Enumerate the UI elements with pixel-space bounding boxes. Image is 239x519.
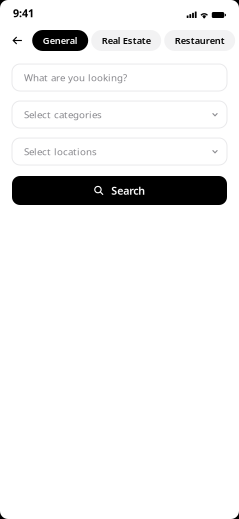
button[interactable]: Restaurent <box>164 30 235 51</box>
button[interactable]: Real Estate <box>91 30 161 51</box>
button[interactable]: Back <box>12 30 32 51</box>
button[interactable]: Select locations <box>12 138 227 165</box>
staticText: Select locations <box>24 145 97 158</box>
staticText: 9:41 <box>13 6 34 20</box>
staticText: Search <box>111 183 145 198</box>
button[interactable]: Select categories <box>12 101 227 128</box>
staticText: Select categories <box>24 108 102 121</box>
staticText: What are you looking? <box>24 71 127 84</box>
button[interactable]: Search <box>12 176 227 205</box>
staticText: General <box>43 34 78 47</box>
button[interactable]: General <box>32 30 88 51</box>
staticText: Real Estate <box>102 34 151 47</box>
staticText: Restaurent <box>175 34 225 47</box>
button[interactable]: What are you looking? <box>12 64 227 91</box>
